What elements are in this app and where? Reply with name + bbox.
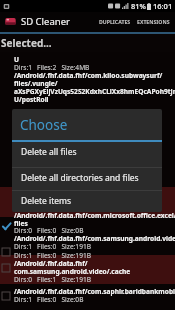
staticText: SD Cleaner [21, 15, 70, 28]
staticText: /Android/.fhf.data.fhf/com.microsoft.off… [14, 211, 175, 220]
staticText: Dirs:1 Files:0 Size:191B [14, 242, 91, 251]
staticText: 16:01 [153, 1, 173, 11]
staticText: Choose [20, 116, 68, 134]
staticText: /Android/.fhf.data.fhf/com.samsung.andro… [14, 234, 175, 243]
button[interactable]: Delete all directories and files [12, 168, 162, 190]
staticText: Dirs:1 Files:2 Size:4MB [14, 63, 90, 72]
staticText: Dirs:1 Files:0 Size:191B [14, 251, 91, 260]
staticText: EXTENSIONS [137, 18, 170, 25]
button[interactable] [0, 133, 175, 160]
staticText: files/.vungle/ [14, 79, 58, 88]
staticText: Selected... [1, 36, 52, 50]
staticText: Dirs:1 Files:0 Size:0B [14, 295, 84, 304]
staticText: Delete all files [21, 146, 77, 158]
staticText: aXsPGXyEljVzUqs52S2KdxhCLlXx8hmEQcAPoh9t… [14, 87, 175, 96]
staticText: Delete items [21, 195, 72, 207]
button[interactable] [0, 255, 175, 284]
button[interactable]: EXTENSIONS [134, 14, 173, 29]
staticText: 81% [131, 1, 146, 11]
button[interactable] [0, 160, 175, 187]
staticText: files [14, 219, 28, 228]
staticText: U [14, 55, 19, 64]
staticText: Dirs:0 Files:1 Size:191B [14, 275, 91, 284]
button[interactable]: Selected... [0, 34, 58, 52]
staticText: DUPLICATES [99, 18, 131, 25]
staticText: Delete all directories and files [21, 172, 139, 184]
button[interactable]: Delete all files [12, 142, 162, 167]
button[interactable] [0, 52, 175, 72]
button[interactable] [0, 284, 175, 310]
staticText: Dirs:0 Files:0 Size:0B [14, 226, 84, 235]
staticText: /Android/.fhf.data.fhf/com.kiloo.subways… [14, 71, 163, 80]
staticText: /Android/.fhf.data.fhf/ [14, 259, 88, 268]
button[interactable] [0, 217, 175, 255]
button[interactable]: SD Cleaner app icon [4, 15, 17, 28]
staticText: U/postRoll [14, 95, 49, 104]
button[interactable] [0, 187, 175, 217]
button[interactable]: Delete items [12, 191, 162, 212]
staticText: com.samsung.android.video/.cache [14, 267, 131, 276]
button[interactable]: DUPLICATES [96, 14, 134, 29]
staticText: /Android/.fhf.data.fhf/com.saphir.baridb… [14, 287, 175, 296]
button[interactable] [0, 72, 175, 106]
button[interactable] [0, 106, 175, 133]
